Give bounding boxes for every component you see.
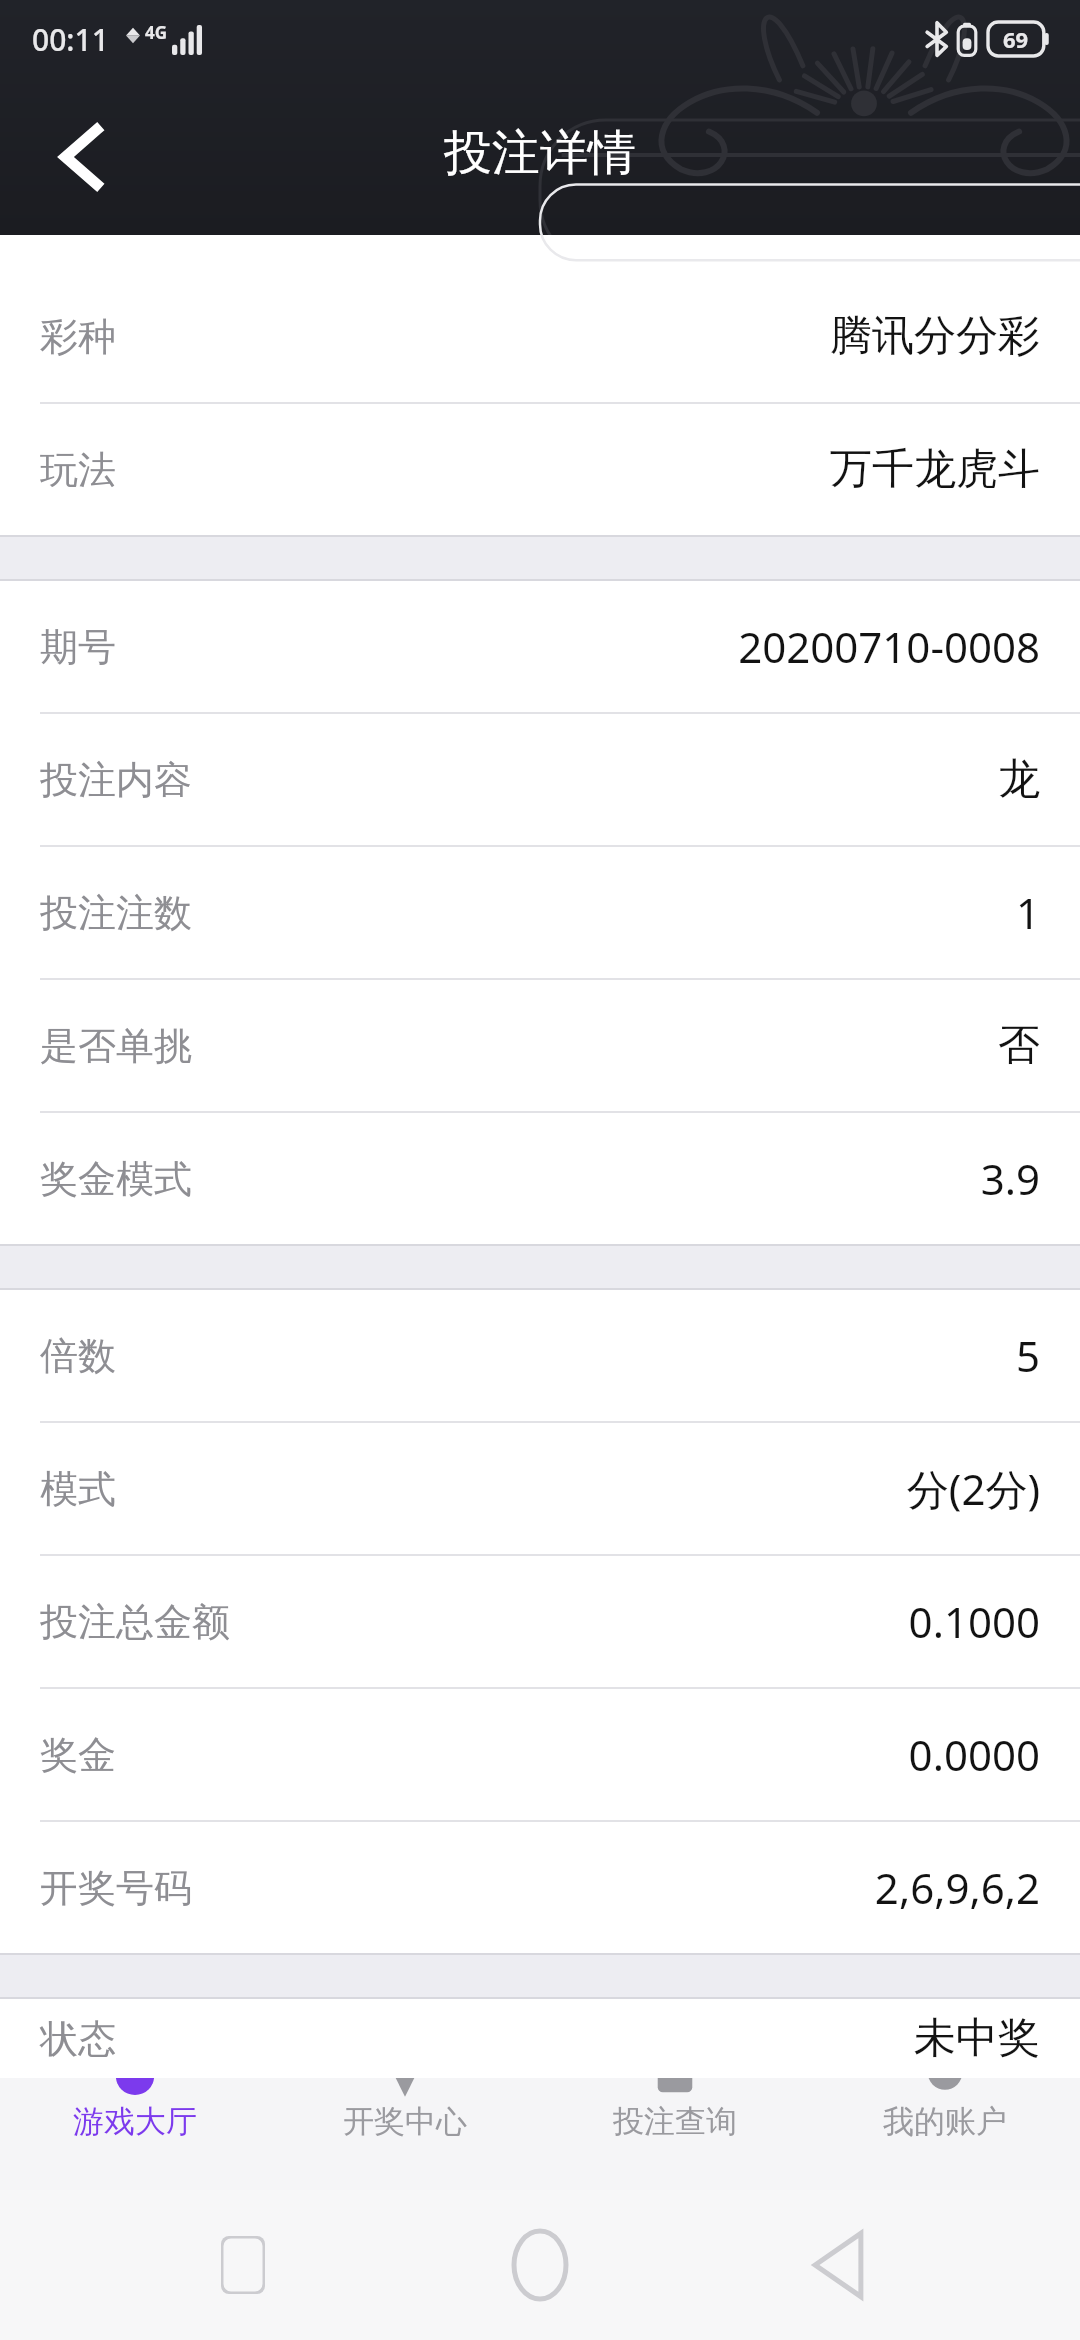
staticText: 我的账户 <box>883 2102 1007 2141</box>
staticText: 龙 <box>998 753 1040 806</box>
staticText: 倍数 <box>40 1332 116 1380</box>
staticText: 00:11 <box>32 19 109 60</box>
staticText: 69 <box>1003 24 1029 54</box>
button[interactable]: 返回 <box>22 97 142 217</box>
staticText: 分(2分) <box>906 1460 1040 1517</box>
staticText: 投注总金额 <box>40 1598 230 1646</box>
button[interactable]: 是否单挑 <box>0 980 1080 1113</box>
button[interactable]: 返回 <box>783 2210 893 2320</box>
button[interactable]: 投注内容 <box>0 714 1080 847</box>
button[interactable]: 投注注数 <box>0 847 1080 980</box>
staticText: 2,6,9,6,2 <box>874 1859 1040 1916</box>
staticText: 否 <box>998 1019 1040 1072</box>
button[interactable]: 模式 <box>0 1423 1080 1556</box>
button[interactable]: 我的账户 <box>810 2078 1080 2190</box>
staticText: 模式 <box>40 1465 116 1513</box>
button[interactable]: 彩种 <box>0 271 1080 404</box>
button[interactable]: 倍数 <box>0 1290 1080 1423</box>
button[interactable]: 游戏大厅 <box>0 2078 270 2190</box>
staticText: 未中奖 <box>914 2012 1040 2065</box>
button[interactable]: 投注查询 <box>540 2078 810 2190</box>
staticText: 投注详情 <box>444 123 636 183</box>
staticText: 游戏大厅 <box>73 2102 197 2141</box>
button[interactable]: 奖金模式 <box>0 1113 1080 1244</box>
button[interactable]: 开奖中心 <box>270 2078 540 2190</box>
button[interactable]: 状态 <box>0 1999 1080 2078</box>
button[interactable]: 奖金 <box>0 1689 1080 1822</box>
staticText: 1 <box>1015 884 1040 941</box>
staticText: 彩种 <box>40 313 116 361</box>
staticText: 3.9 <box>980 1150 1040 1207</box>
staticText: 是否单挑 <box>40 1022 192 1070</box>
staticText: 状态 <box>40 2015 116 2063</box>
staticText: 0.1000 <box>908 1593 1040 1650</box>
button[interactable]: 主页 <box>485 2210 595 2320</box>
staticText: 4G <box>145 21 168 44</box>
staticText: 开奖中心 <box>343 2102 467 2141</box>
staticText: 奖金模式 <box>40 1155 192 1203</box>
staticText: 投注查询 <box>613 2102 737 2141</box>
button[interactable]: 开奖号码 <box>0 1822 1080 1953</box>
button[interactable]: 最近任务 <box>188 2210 298 2320</box>
staticText: 5 <box>1015 1327 1040 1384</box>
staticText: 20200710-0008 <box>738 618 1040 675</box>
button[interactable]: 玩法 <box>0 404 1080 535</box>
staticText: 万千龙虎斗 <box>830 443 1040 496</box>
staticText: 投注内容 <box>40 756 192 804</box>
staticText: 腾讯分分彩 <box>830 310 1040 363</box>
button[interactable]: 期号 <box>0 581 1080 714</box>
button[interactable]: 投注总金额 <box>0 1556 1080 1689</box>
staticText: 奖金 <box>40 1731 116 1779</box>
staticText: 0.0000 <box>908 1726 1040 1783</box>
staticText: 期号 <box>40 623 116 671</box>
staticText: 玩法 <box>40 446 116 494</box>
staticText: 开奖号码 <box>40 1864 192 1912</box>
staticText: 投注注数 <box>40 889 192 937</box>
